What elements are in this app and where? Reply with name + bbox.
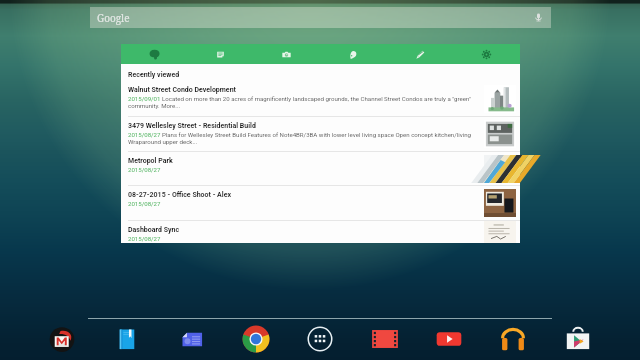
button[interactable]: Camera note (253, 44, 319, 64)
button[interactable]: 3479 Wellesley Street - Residential Buil… (121, 117, 520, 151)
button[interactable]: New note (187, 44, 253, 64)
button[interactable]: Walnut Street Condo Development (121, 81, 520, 116)
button[interactable]: Settings (453, 44, 520, 64)
staticText: Metropol Park (128, 157, 173, 165)
button[interactable]: Play Movies (370, 324, 400, 354)
button[interactable]: Play Store (563, 324, 593, 354)
button[interactable]: Handwriting note (386, 44, 453, 64)
button[interactable]: Dashboard Sync (121, 221, 520, 243)
button[interactable]: Play Music (498, 324, 528, 354)
staticText: 3479 Wellesley Street - Residential Buil… (128, 122, 256, 130)
button[interactable]: Play Books (112, 324, 142, 354)
button[interactable]: All apps (305, 324, 335, 354)
button[interactable]: Metropol Park (121, 152, 520, 185)
staticText: 2015/08/27 (128, 235, 161, 242)
staticText: Dashboard Sync (128, 226, 180, 234)
staticText: Google (97, 11, 130, 25)
button[interactable]: YouTube (434, 324, 464, 354)
staticText: 2015/08/27 (128, 166, 161, 173)
button[interactable]: Chrome (241, 324, 271, 354)
button[interactable]: Gmail (47, 324, 77, 354)
staticText: 2015/08/27 Plans for Wellesley Street Bu… (128, 131, 474, 146)
button[interactable]: 08-27-2015 - Office Shoot - Alex (121, 186, 520, 220)
button[interactable]: Evernote (121, 44, 187, 64)
staticText: 2015/08/27 (128, 200, 161, 207)
staticText: Walnut Street Condo Development (128, 86, 236, 94)
staticText: Recently viewed (128, 71, 180, 79)
button[interactable]: Audio note (319, 44, 386, 64)
button[interactable]: Google Slides (177, 324, 207, 354)
button[interactable]: Google (90, 7, 551, 28)
staticText: 2015/09/01 Located on more than 20 acres… (128, 95, 474, 110)
button[interactable]: Voice search (532, 11, 545, 24)
staticText: 08-27-2015 - Office Shoot - Alex (128, 191, 232, 199)
